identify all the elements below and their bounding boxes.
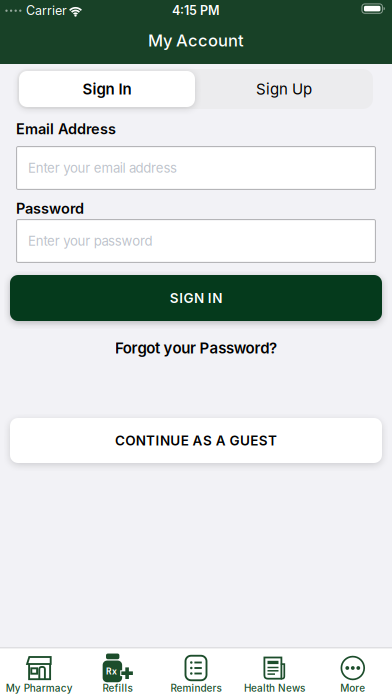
button[interactable]: Rx bbox=[78, 648, 157, 696]
staticText: Password bbox=[16, 200, 84, 217]
button[interactable]: Health News bbox=[235, 648, 314, 696]
staticText: More bbox=[340, 682, 365, 694]
button[interactable]: My Pharmacy bbox=[0, 648, 78, 696]
staticText: Rx bbox=[106, 666, 117, 676]
staticText: SIGN IN bbox=[170, 290, 222, 306]
staticText: 4:15 PM bbox=[172, 3, 220, 18]
button[interactable]: Reminders bbox=[157, 648, 235, 696]
button[interactable]: Forgot your Password? bbox=[115, 339, 277, 357]
staticText: Sign Up bbox=[256, 80, 312, 98]
button[interactable]: Sign In bbox=[19, 71, 195, 107]
staticText: Carrier bbox=[26, 3, 67, 18]
button[interactable]: Sign Up bbox=[196, 71, 372, 107]
staticText: Reminders bbox=[170, 682, 221, 694]
staticText: Forgot your Password? bbox=[115, 339, 277, 357]
staticText: Sign In bbox=[82, 80, 131, 98]
button[interactable]: CONTINUE AS A GUEST bbox=[10, 418, 382, 463]
staticText: Refills bbox=[103, 682, 133, 694]
staticText: Enter your password bbox=[28, 233, 153, 249]
staticText: CONTINUE AS A GUEST bbox=[115, 432, 277, 449]
button[interactable]: More bbox=[314, 648, 392, 696]
staticText: Enter your email address bbox=[28, 160, 177, 176]
staticText: My Pharmacy bbox=[6, 682, 73, 694]
staticText: Health News bbox=[244, 682, 305, 694]
staticText: Email Address bbox=[16, 120, 116, 138]
staticText: My Account bbox=[148, 30, 244, 50]
button[interactable]: SIGN IN bbox=[10, 275, 382, 321]
